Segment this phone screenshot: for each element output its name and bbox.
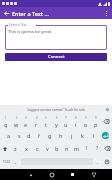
staticText: o — [84, 121, 88, 128]
button[interactable]: s — [14, 129, 24, 142]
button[interactable]: Home — [41, 169, 62, 180]
button[interactable]: Back — [0, 7, 12, 19]
staticText: 7 — [65, 116, 67, 120]
staticText: m — [74, 145, 80, 152]
staticText: f — [38, 132, 40, 139]
staticText: 2 — [16, 116, 18, 120]
staticText: 0 — [95, 116, 97, 120]
button[interactable]: 2 — [11, 114, 21, 129]
button[interactable]: 0 — [91, 114, 101, 129]
button[interactable]: j — [66, 129, 77, 142]
button[interactable]: Backspace — [102, 142, 112, 155]
staticText: 3 — [25, 116, 27, 120]
staticText: 6 — [56, 116, 58, 120]
button[interactable]: h — [55, 129, 66, 142]
staticText: v — [46, 145, 49, 152]
button[interactable]: Emoji — [102, 155, 112, 168]
staticText: a — [7, 132, 11, 139]
staticText: y — [55, 121, 58, 128]
staticText: g — [48, 132, 52, 139]
staticText: Enter a Text ... — [9, 23, 30, 27]
button[interactable]: Keyboard settings — [105, 107, 110, 112]
staticText: l — [93, 132, 95, 139]
button[interactable]: Suggest contact names? Touch for info. — [0, 105, 112, 114]
button[interactable]: Menu — [83, 169, 104, 180]
staticText: 1 — [5, 116, 7, 120]
staticText: ! — [86, 145, 88, 152]
staticText: 8 — [75, 116, 77, 120]
staticText: This is gonna be great — [8, 29, 52, 35]
staticText: x — [25, 145, 28, 152]
button[interactable]: Connect — [5, 53, 107, 61]
button[interactable]: 6 — [51, 114, 61, 129]
button[interactable]: 8 — [71, 114, 81, 129]
staticText: z — [14, 145, 17, 152]
staticText: d — [27, 132, 31, 139]
staticText: Suggest contact names? Touch for info. — [27, 108, 86, 112]
button[interactable]: n — [62, 142, 72, 155]
button[interactable]: g — [44, 129, 55, 142]
button[interactable]: v — [42, 142, 52, 155]
button[interactable]: 3 — [21, 114, 31, 129]
button[interactable]: x — [21, 142, 32, 155]
button[interactable]: b — [52, 142, 62, 155]
staticText: t — [45, 121, 47, 128]
staticText: ?123 — [3, 160, 10, 164]
button[interactable]: ? — [92, 142, 102, 155]
staticText: h — [59, 132, 63, 139]
staticText: j — [71, 132, 73, 139]
staticText: r — [35, 121, 38, 128]
button[interactable]: d — [24, 129, 34, 142]
staticText: w — [14, 121, 19, 128]
button[interactable]: f — [34, 129, 44, 142]
button[interactable]: Enter — [99, 129, 112, 142]
staticText: i — [75, 121, 77, 128]
staticText: e — [24, 121, 28, 128]
button[interactable]: c — [32, 142, 42, 155]
button[interactable]: . — [94, 155, 102, 168]
button[interactable]: k — [77, 129, 88, 142]
staticText: , — [15, 159, 17, 165]
button[interactable]: a — [4, 129, 14, 142]
button[interactable]: 7 — [61, 114, 71, 129]
button[interactable]: m — [72, 142, 82, 155]
button[interactable]: 4 — [31, 114, 41, 129]
button[interactable]: Enter a Text ... — [5, 23, 107, 50]
staticText: Enter a Text ... — [12, 10, 49, 17]
staticText: 4 — [36, 116, 38, 120]
staticText: q — [4, 121, 8, 128]
staticText: 5 — [45, 116, 47, 120]
button[interactable]: , — [12, 155, 20, 168]
staticText: s — [18, 132, 21, 139]
staticText: n — [65, 145, 69, 152]
staticText: k — [81, 132, 84, 139]
staticText: Connect — [48, 54, 65, 60]
staticText: ? — [96, 145, 99, 152]
button[interactable]: Hide keyboard — [20, 169, 41, 180]
button[interactable]: z — [10, 142, 21, 155]
staticText: 9 — [85, 116, 87, 120]
button[interactable]: 9 — [81, 114, 91, 129]
button[interactable]: Backspace — [101, 114, 112, 129]
button[interactable]: Shift — [0, 142, 10, 155]
staticText: b — [55, 145, 59, 152]
button[interactable]: More options — [100, 7, 112, 19]
staticText: c — [36, 145, 39, 152]
button[interactable]: ! — [82, 142, 92, 155]
staticText: . — [97, 159, 99, 165]
button[interactable]: 1 — [0, 114, 11, 129]
staticText: p — [94, 121, 98, 128]
button[interactable]: l — [88, 129, 99, 142]
button[interactable]: ?123 — [0, 155, 12, 168]
button[interactable]: 5 — [41, 114, 51, 129]
button[interactable]: Recent apps — [62, 169, 83, 180]
staticText: u — [64, 121, 68, 128]
